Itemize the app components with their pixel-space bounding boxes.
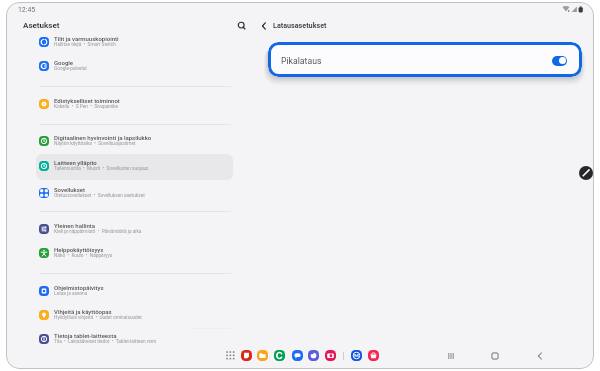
staticText: Helppokäyttöisyys: [54, 246, 104, 253]
button[interactable]: Sovellukset: [36, 181, 233, 207]
staticText: Ohjelmistopäivitys: [54, 284, 104, 291]
staticText: Yleinen hallinta: [54, 222, 96, 229]
staticText: Oletussovellukset • Sovelluksen asetukse…: [54, 193, 145, 199]
staticText: Edistykselliset toiminnot: [54, 97, 120, 104]
button[interactable]: camera: [325, 350, 336, 361]
button[interactable]: Edistykselliset toiminnot: [36, 92, 233, 118]
staticText: Digitaalinen hyvinvointi ja lapsilukko: [54, 134, 152, 141]
button[interactable]: Ohjelmistopäivitys: [36, 279, 233, 305]
staticText: Näkö • Kuulo • Näppäryys: [54, 253, 113, 259]
staticText: Tilit ja varmuuskopiointi: [54, 35, 119, 42]
button[interactable]: messages: [292, 350, 303, 361]
button[interactable]: m: [351, 350, 362, 361]
staticText: Hyödyllisiä vihjeitä • Uudet ominaisuude…: [54, 315, 142, 321]
button[interactable]: internet: [308, 350, 319, 361]
button[interactable]: store: [368, 350, 379, 361]
staticText: Hallitse tilejä • Smart Switch: [54, 42, 116, 48]
button[interactable]: Recent apps: [442, 347, 460, 365]
button[interactable]: Helppokäyttöisyys: [36, 241, 233, 267]
staticText: Kieli ja näppäimistö • Päivämäärä ja aik…: [54, 229, 142, 235]
button[interactable]: Pikalataus: [268, 42, 582, 77]
staticText: Google-palvelut: [54, 66, 87, 72]
button[interactable]: Search: [235, 19, 249, 33]
button[interactable]: Back: [531, 347, 549, 365]
button[interactable]: files: [257, 350, 268, 361]
button[interactable]: All apps: [222, 347, 238, 363]
staticText: Laitteen ylläpito: [54, 159, 97, 166]
staticText: 12:45: [18, 6, 36, 14]
staticText: Tallennustila • Muisti • Sovellusten suo…: [54, 166, 149, 172]
button[interactable]: Edit: [579, 166, 593, 180]
staticText: Tietoja tablet-laitteesta: [54, 332, 117, 339]
button[interactable]: Back: [257, 19, 271, 33]
staticText: Latausasetukset: [273, 21, 327, 29]
staticText: Pikalataus: [281, 56, 322, 66]
staticText: Näytön käyttöaika • Sovellusajastimet: [54, 141, 136, 147]
staticText: Kokeilu • S Pen • Sivupainike: [54, 104, 119, 110]
button[interactable]: Tilit ja varmuuskopiointi: [36, 30, 233, 56]
staticText: Vihjeitä ja käyttöopas: [54, 308, 112, 315]
staticText: Google: [54, 59, 74, 66]
staticText: Sovellukset: [54, 186, 86, 193]
staticText: Lataa ja asenna: [54, 291, 88, 297]
button[interactable]: Vihjeitä ja käyttöopas: [36, 303, 233, 329]
button[interactable]: Yleinen hallinta: [36, 217, 233, 243]
button[interactable]: Tietoja tablet-laitteesta: [36, 327, 233, 353]
staticText: Asetukset: [23, 21, 60, 30]
button[interactable]: Laitteen ylläpito: [36, 154, 233, 180]
button[interactable]: Home: [486, 347, 504, 365]
button[interactable]: notes: [241, 350, 252, 361]
staticText: Tila • Lakisääteiset tiedot • Tablet-lai…: [54, 339, 156, 345]
button[interactable]: Digitaalinen hyvinvointi ja lapsilukko: [36, 129, 233, 155]
button[interactable]: Google: [36, 54, 233, 80]
button[interactable]: phone: [274, 350, 285, 361]
